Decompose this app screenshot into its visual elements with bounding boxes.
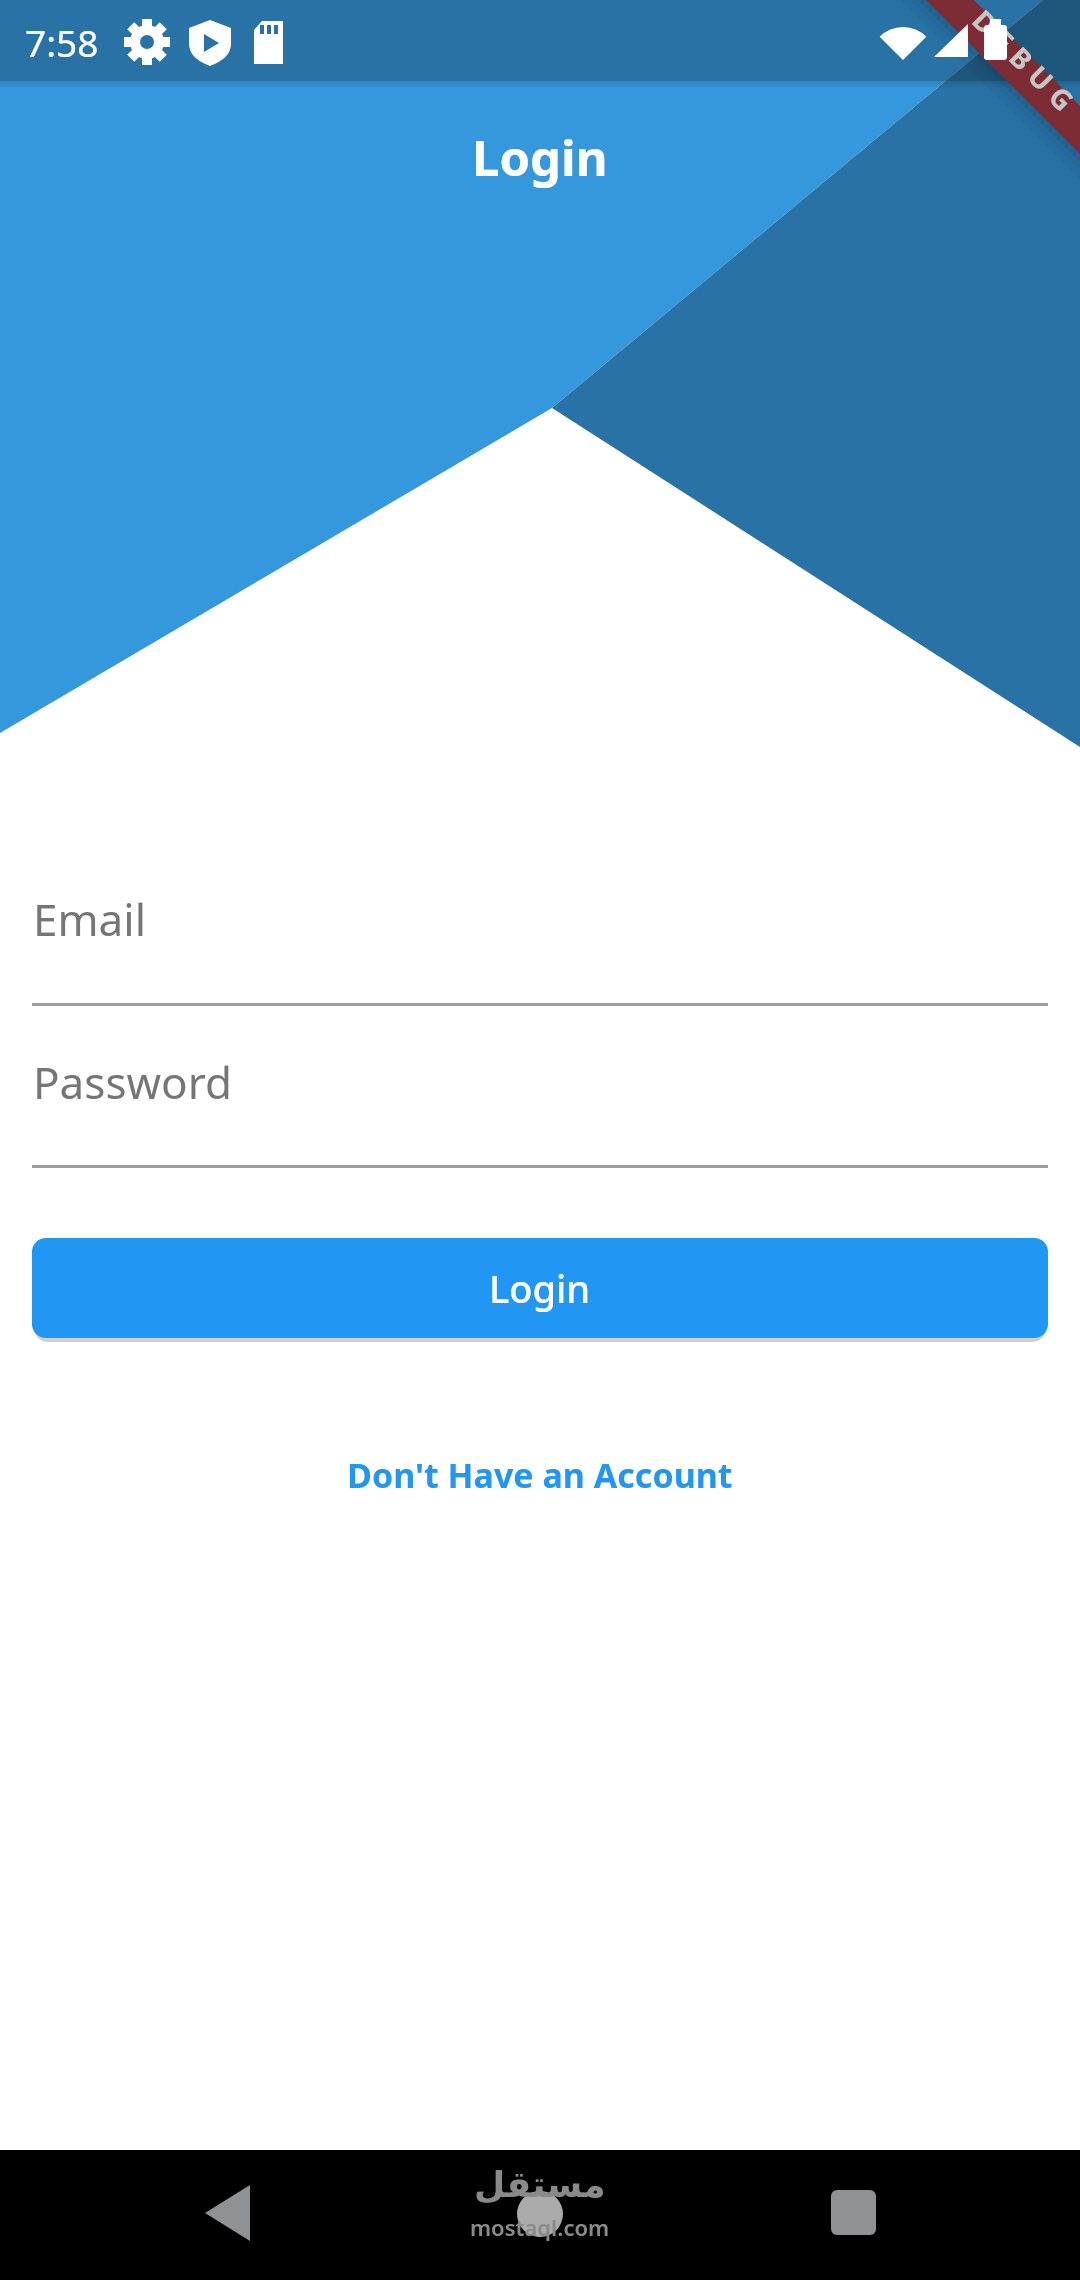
staticText: Email <box>33 889 146 949</box>
button[interactable] <box>495 2180 585 2260</box>
staticText: Login <box>489 1262 591 1314</box>
button[interactable]: Email <box>32 870 1048 1006</box>
staticText: Password <box>33 1052 233 1112</box>
staticText: 7:58 <box>25 17 99 67</box>
staticText: Login <box>472 124 608 191</box>
staticText: DEBUG <box>965 1 1080 125</box>
button[interactable]: Don't Have an Account <box>347 1452 733 1498</box>
button[interactable] <box>810 2180 900 2260</box>
button[interactable]: Login <box>32 1238 1048 1338</box>
button[interactable] <box>180 2180 270 2260</box>
staticText: mostaql.com <box>470 2212 610 2242</box>
staticText: مستقل <box>474 2164 606 2206</box>
button[interactable]: Password <box>32 1032 1048 1168</box>
